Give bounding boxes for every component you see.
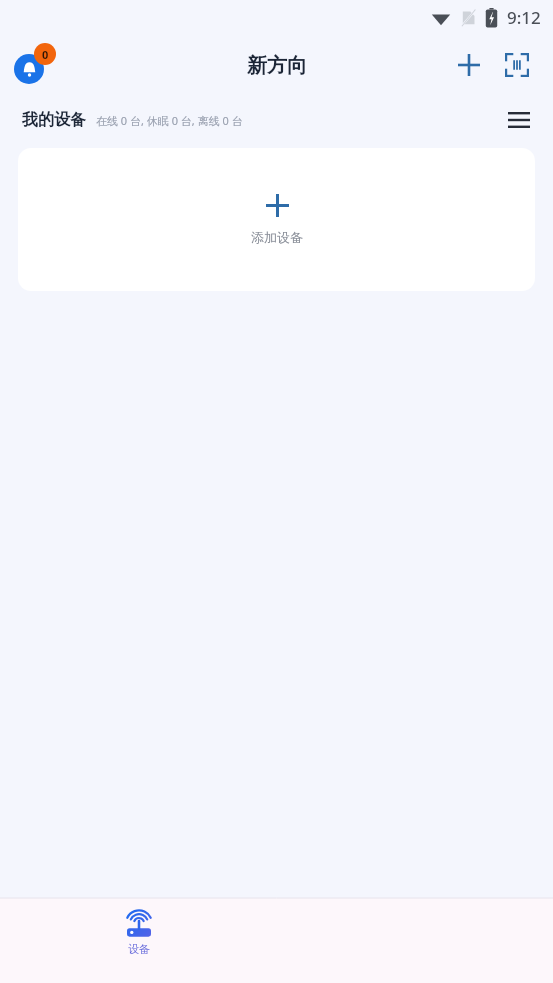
staticText: 在线 0 台, 休眠 0 台, 离线 0 台 [96, 113, 243, 128]
button[interactable]: 设备 [108, 912, 170, 956]
staticText: 新方向 [247, 53, 307, 78]
staticText: 添加设备 [251, 229, 303, 245]
button[interactable]: 添加设备 [18, 148, 535, 291]
staticText: 设备 [128, 942, 150, 956]
button[interactable]: Notifications [12, 43, 56, 87]
staticText: 9:12 [507, 6, 541, 29]
button[interactable]: Add [449, 45, 489, 85]
staticText: 我的设备 [22, 110, 86, 130]
button[interactable]: Menu [501, 102, 537, 138]
button[interactable]: Scan code [497, 45, 537, 85]
staticText: 0 [42, 47, 49, 62]
